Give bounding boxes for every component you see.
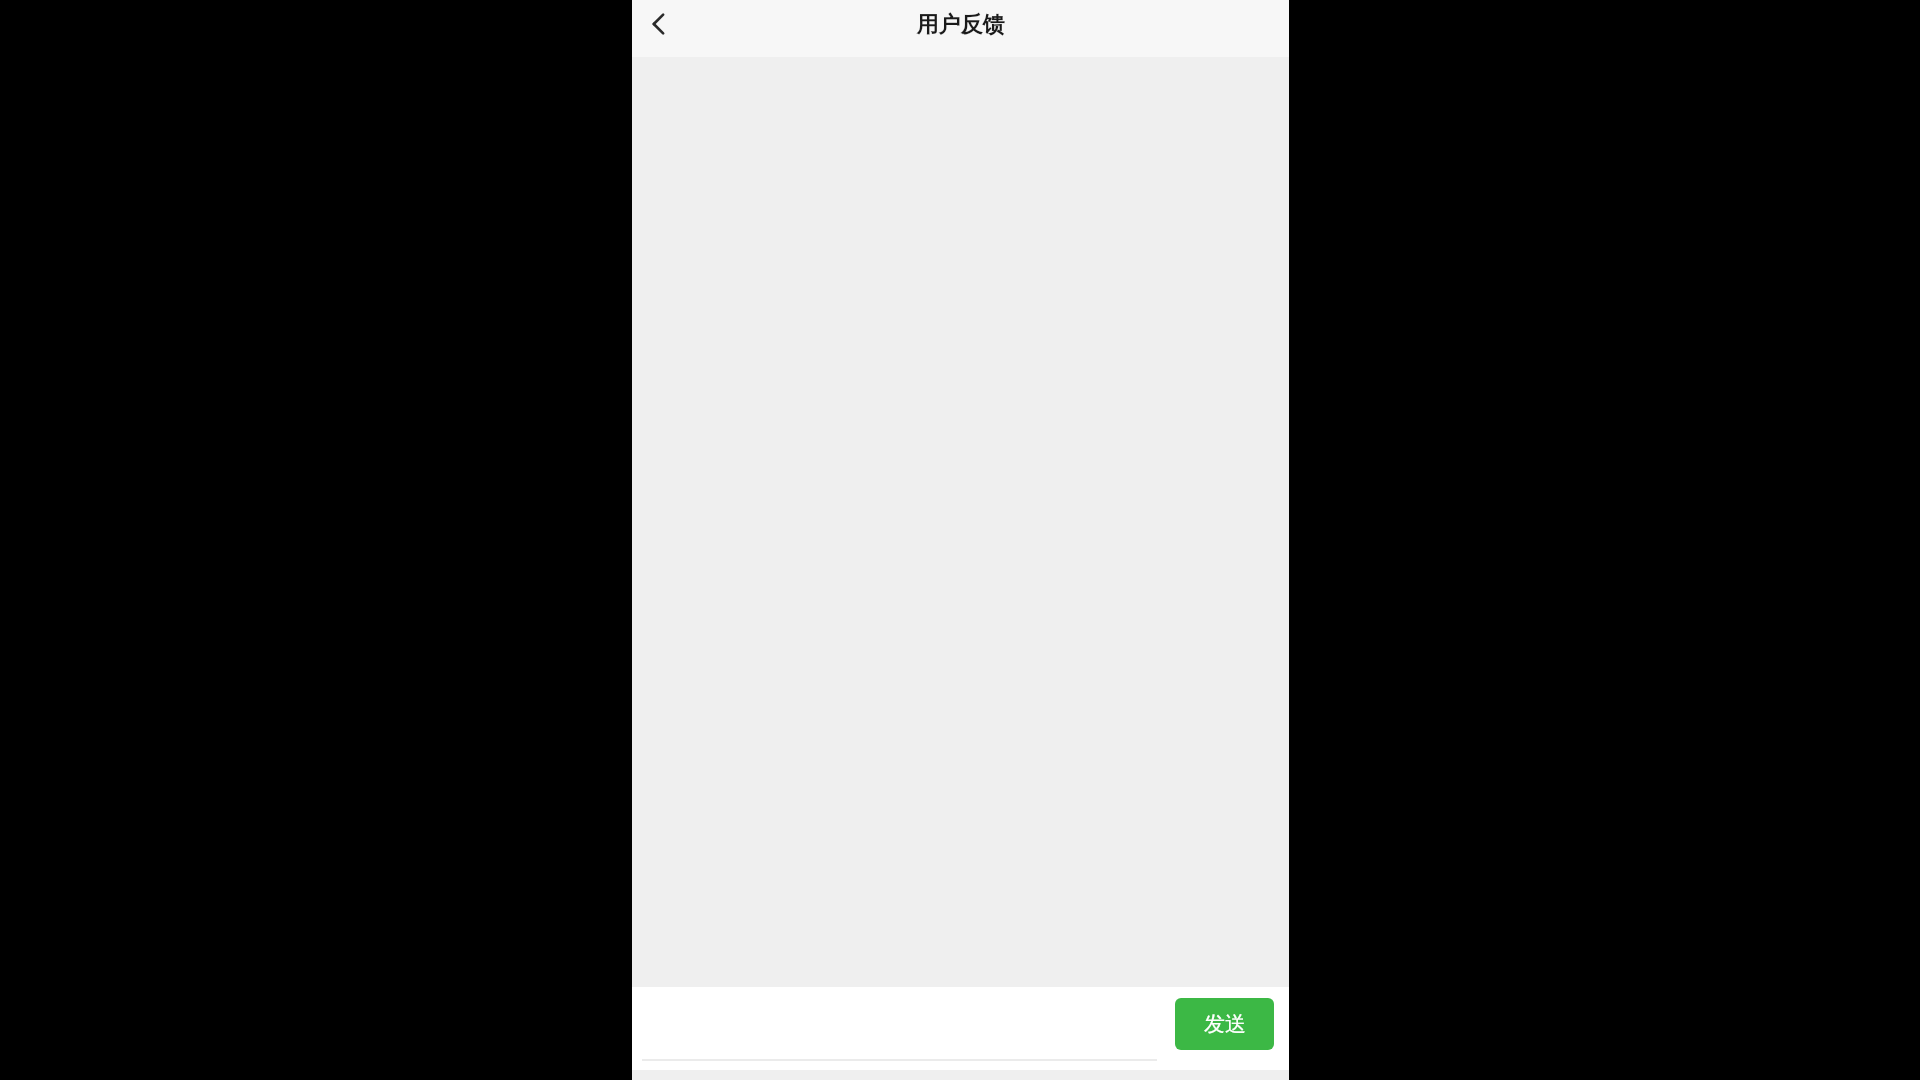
- staticText: 发送: [1204, 1011, 1246, 1037]
- button[interactable]: Back: [632, 0, 686, 51]
- button[interactable]: [642, 1001, 1157, 1061]
- staticText: 用户反馈: [632, 11, 1289, 39]
- button[interactable]: 发送: [1175, 998, 1274, 1050]
